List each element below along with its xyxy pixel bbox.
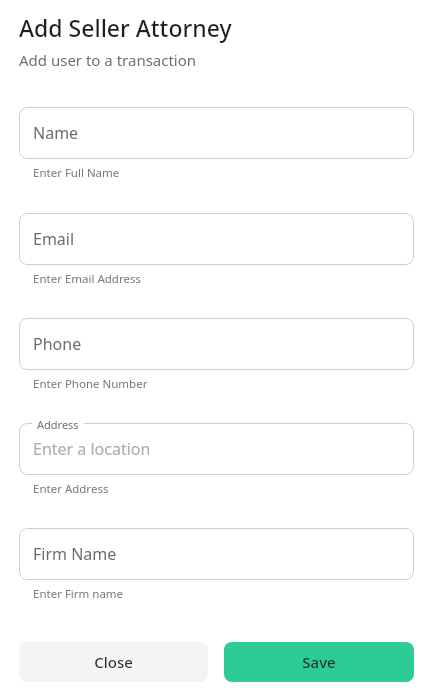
staticText: Phone <box>33 333 82 355</box>
button[interactable]: Close <box>19 642 208 682</box>
staticText: Enter Phone Number <box>33 376 148 392</box>
staticText: Enter Email Address <box>33 271 141 287</box>
staticText: Email <box>33 228 75 250</box>
staticText: Close <box>94 652 133 672</box>
button[interactable]: Phone <box>19 318 414 370</box>
staticText: Enter Address <box>33 481 109 497</box>
button[interactable]: Enter a location <box>19 423 414 475</box>
button[interactable]: Firm Name <box>19 528 414 580</box>
staticText: Enter a location <box>33 438 151 460</box>
staticText: Enter Full Name <box>33 165 120 181</box>
staticText: Name <box>33 122 79 144</box>
button[interactable]: Save <box>224 642 414 682</box>
staticText: Add user to a transaction <box>19 50 197 70</box>
button[interactable]: Email <box>19 213 414 265</box>
button[interactable]: Name <box>19 107 414 159</box>
staticText: Add Seller Attorney <box>19 12 232 43</box>
staticText: Enter Firm name <box>33 586 124 602</box>
staticText: Address <box>37 417 79 432</box>
staticText: Save <box>302 652 336 672</box>
staticText: Firm Name <box>33 543 117 565</box>
